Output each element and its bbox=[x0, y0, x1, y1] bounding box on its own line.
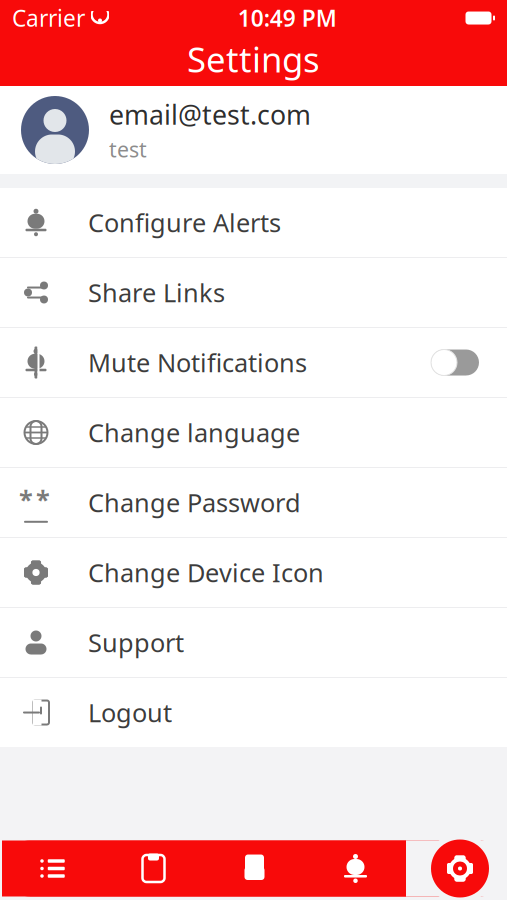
staticText: 10:49 PM bbox=[238, 3, 337, 33]
button[interactable]: * bbox=[0, 468, 507, 537]
staticText: test bbox=[109, 135, 147, 163]
button[interactable]: Settings bbox=[425, 833, 495, 900]
button[interactable]: Home bbox=[204, 840, 305, 896]
staticText: Logout bbox=[88, 696, 172, 729]
staticText: Carrier bbox=[12, 3, 85, 33]
staticText: Support bbox=[88, 626, 184, 659]
staticText: Change language bbox=[88, 416, 300, 449]
staticText: Change Password bbox=[88, 486, 301, 519]
button[interactable]: Support bbox=[0, 608, 507, 677]
button[interactable]: Mute Notifications bbox=[0, 328, 507, 397]
button[interactable]: Change language bbox=[0, 398, 507, 467]
staticText: Change Device Icon bbox=[88, 556, 324, 589]
button[interactable]: Configure Alerts bbox=[0, 188, 507, 257]
button[interactable]: Alerts bbox=[305, 840, 406, 896]
button[interactable]: Logout bbox=[0, 678, 507, 747]
staticText: * bbox=[36, 482, 50, 516]
staticText: email@test.com bbox=[109, 97, 311, 132]
staticText: Settings bbox=[187, 36, 320, 82]
staticText: Mute Notifications bbox=[88, 346, 307, 379]
button[interactable]: Menu bbox=[2, 840, 103, 896]
staticText: Configure Alerts bbox=[88, 206, 281, 239]
staticText: Share Links bbox=[88, 276, 225, 309]
staticText: * bbox=[19, 482, 33, 516]
button[interactable]: email@test.com bbox=[0, 86, 507, 174]
button[interactable]: Share Links bbox=[0, 258, 507, 327]
button[interactable]: Change Device Icon bbox=[0, 538, 507, 607]
button[interactable]: Tasks bbox=[103, 840, 204, 896]
